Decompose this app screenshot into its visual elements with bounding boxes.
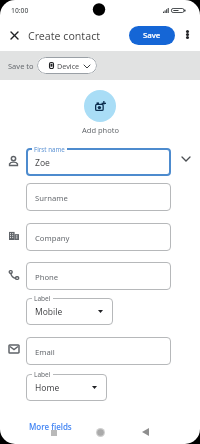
button[interactable] bbox=[26, 148, 171, 176]
button[interactable]: Recents bbox=[46, 425, 62, 441]
staticText: Label bbox=[34, 370, 51, 379]
button[interactable] bbox=[26, 374, 107, 401]
staticText: Phone bbox=[35, 272, 59, 282]
staticText: Home bbox=[35, 382, 60, 394]
button[interactable] bbox=[26, 298, 113, 325]
button[interactable]: Email bbox=[26, 337, 171, 365]
button[interactable]: Device bbox=[37, 57, 97, 74]
button[interactable]: Phone bbox=[26, 262, 171, 290]
button[interactable]: Close bbox=[3, 24, 25, 46]
staticText: More fields bbox=[29, 421, 72, 432]
staticText: Mobile bbox=[35, 306, 63, 318]
button[interactable]: Add photo bbox=[84, 90, 116, 122]
staticText: Add photo bbox=[82, 125, 119, 135]
staticText: Email bbox=[35, 347, 55, 357]
button[interactable]: Back bbox=[137, 424, 153, 440]
staticText: Device bbox=[57, 61, 80, 71]
button[interactable]: Surname bbox=[26, 183, 171, 211]
staticText: First name bbox=[34, 145, 65, 153]
staticText: 10:00 bbox=[11, 6, 29, 15]
staticText: Create contact bbox=[28, 29, 101, 43]
button[interactable]: Save bbox=[129, 26, 175, 45]
staticText: Save bbox=[143, 30, 161, 41]
button[interactable]: More fields bbox=[26, 419, 75, 434]
button[interactable]: Company bbox=[26, 223, 171, 251]
staticText: Surname bbox=[35, 193, 68, 203]
button[interactable]: Expand name fields bbox=[179, 152, 193, 166]
staticText: Save to bbox=[8, 61, 34, 71]
button[interactable]: Home bbox=[92, 424, 108, 440]
staticText: Zoe bbox=[35, 157, 50, 169]
staticText: Label bbox=[34, 294, 51, 303]
button[interactable]: More options bbox=[178, 25, 197, 44]
staticText: Company bbox=[35, 233, 70, 243]
